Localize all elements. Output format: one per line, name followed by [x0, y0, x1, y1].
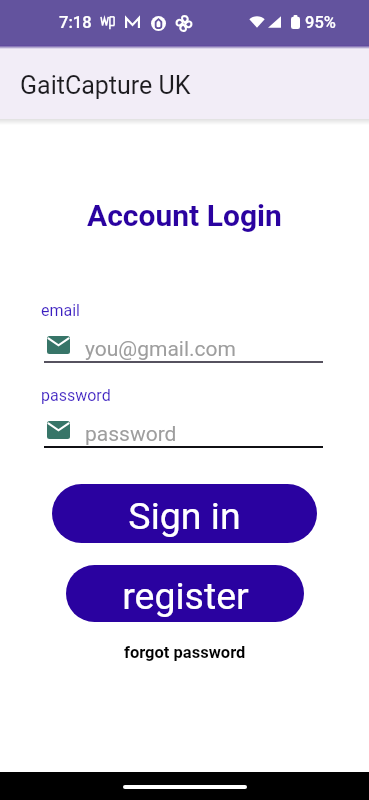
staticText: register — [122, 574, 249, 618]
staticText: 95% — [305, 13, 336, 32]
staticText: Sign in — [128, 494, 241, 538]
staticText: password — [41, 386, 111, 405]
button[interactable] — [44, 328, 323, 362]
staticText: 7:18 — [59, 13, 92, 32]
button[interactable]: register — [66, 565, 304, 622]
button[interactable]: forgot password — [124, 643, 246, 662]
button[interactable] — [44, 413, 323, 447]
staticText: GaitCapture UK — [20, 71, 191, 100]
staticText: you@gmail.com — [85, 337, 236, 362]
button[interactable]: Sign in — [52, 484, 317, 543]
staticText: password — [85, 422, 177, 447]
staticText: Account Login — [87, 198, 282, 233]
staticText: email — [41, 301, 80, 320]
